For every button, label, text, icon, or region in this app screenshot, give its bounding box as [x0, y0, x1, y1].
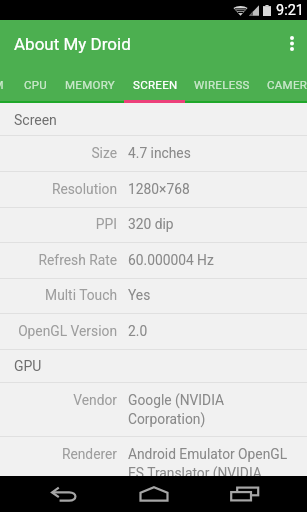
staticText: ROM — [0, 78, 4, 91]
staticText: 2.0 — [128, 323, 148, 339]
staticText: GPU — [14, 358, 42, 374]
button[interactable]: CPU — [15, 67, 57, 103]
button[interactable]: MEMORY — [57, 67, 124, 103]
staticText: About My Droid — [14, 34, 131, 54]
button[interactable]: CAMERA — [258, 67, 307, 103]
staticText: Vendor — [73, 392, 117, 408]
staticText: MEMORY — [65, 78, 116, 91]
staticText: OpenGL Version — [18, 323, 117, 339]
button[interactable]: ROM — [0, 67, 9, 103]
button[interactable]: WIRELESS — [185, 67, 258, 103]
button[interactable]: Back — [34, 476, 94, 512]
staticText: Multi Touch — [45, 287, 117, 303]
button[interactable]: More options — [277, 20, 307, 67]
staticText: Size — [91, 145, 117, 161]
staticText: 9:21 — [276, 2, 304, 19]
button[interactable]: SCREEN — [125, 67, 186, 103]
button[interactable]: Home — [124, 476, 184, 512]
button[interactable]: Recent apps — [215, 476, 275, 512]
staticText: PPI — [95, 216, 117, 232]
staticText: WIRELESS — [194, 78, 250, 91]
button[interactable]: Size — [0, 136, 307, 172]
staticText: 320 dip — [128, 216, 174, 232]
staticText: Google (NVIDIA Corporation) — [128, 392, 291, 427]
staticText: Yes — [128, 287, 151, 303]
staticText: Resolution — [51, 181, 117, 197]
button[interactable]: Renderer — [0, 437, 307, 476]
staticText: CAMERA — [267, 78, 307, 91]
staticText: Android Emulator OpenGL ES Translator (N… — [128, 446, 291, 476]
staticText: 4.7 inches — [128, 145, 191, 161]
staticText: 60.000004 Hz — [128, 252, 214, 268]
staticText: Refresh Rate — [38, 252, 117, 268]
button[interactable]: OpenGL Version — [0, 314, 307, 350]
button[interactable]: PPI — [0, 207, 307, 243]
button[interactable]: Multi Touch — [0, 278, 307, 314]
staticText: 1280×768 — [128, 181, 190, 197]
button[interactable]: Resolution — [0, 172, 307, 208]
staticText: SCREEN — [133, 78, 178, 91]
button[interactable]: Vendor — [0, 383, 307, 437]
staticText: Screen — [14, 112, 57, 128]
staticText: CPU — [24, 78, 48, 91]
staticText: Renderer — [61, 446, 117, 462]
button[interactable]: Refresh Rate — [0, 243, 307, 279]
